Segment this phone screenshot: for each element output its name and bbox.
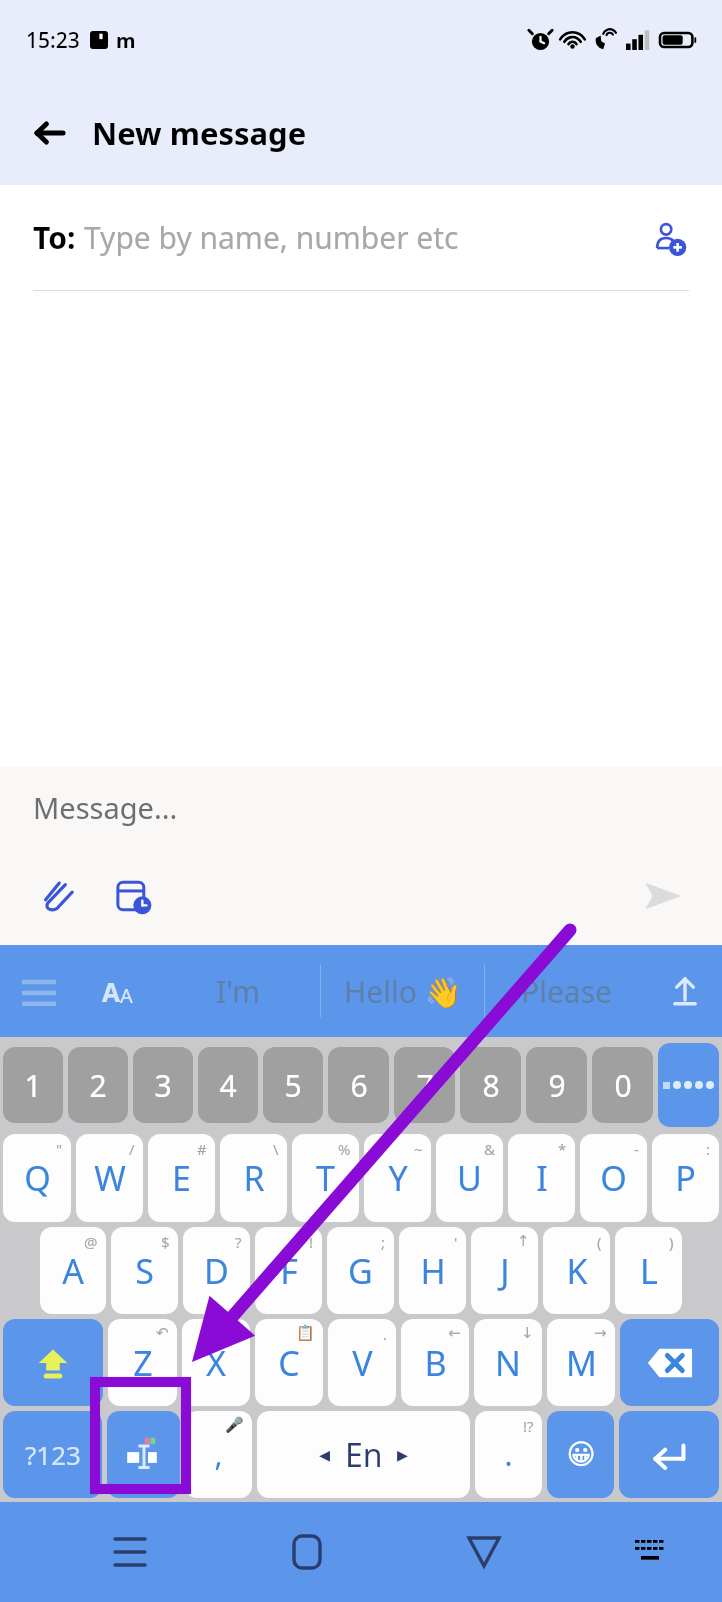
button[interactable]: Hide keyboard (615, 1517, 685, 1587)
button[interactable]: Delete (620, 1319, 719, 1406)
button[interactable]: F (255, 1227, 322, 1314)
button[interactable]: I'm (156, 945, 320, 1037)
button[interactable]: Back (449, 1517, 519, 1587)
staticText: 6 (350, 1065, 368, 1106)
staticText: N (495, 1340, 521, 1386)
staticText: A (120, 982, 133, 1009)
button[interactable]: J (471, 1227, 538, 1314)
button[interactable]: I (508, 1134, 575, 1222)
button[interactable]: G (327, 1227, 394, 1314)
staticText: ? (235, 1232, 242, 1252)
button[interactable]: Q (3, 1134, 71, 1222)
button[interactable]: Menu (0, 945, 78, 1037)
button[interactable]: ◂ (257, 1411, 470, 1498)
button[interactable]: L (615, 1227, 682, 1314)
button[interactable]: V (328, 1319, 396, 1406)
staticText: 4 (219, 1065, 237, 1106)
button[interactable]: Split keyboard (107, 1411, 180, 1498)
staticText: C (278, 1340, 300, 1386)
staticText: ?123 (25, 1437, 81, 1472)
button[interactable]: Expand (648, 945, 722, 1037)
button[interactable]: Schedule message (104, 867, 162, 925)
button[interactable]: Shift (3, 1319, 103, 1406)
staticText: E (172, 1155, 191, 1201)
button[interactable]: 8 (460, 1047, 521, 1123)
button[interactable]: C (255, 1319, 323, 1406)
staticText: A (62, 1248, 84, 1294)
button[interactable]: Y (364, 1134, 431, 1222)
button[interactable]: H (399, 1227, 466, 1314)
staticText: ! (309, 1232, 314, 1252)
button[interactable]: S (111, 1227, 178, 1314)
button[interactable]: U (436, 1134, 503, 1222)
button[interactable]: Attach (28, 867, 86, 925)
button[interactable]: 9 (526, 1047, 587, 1123)
staticText: B (424, 1340, 447, 1386)
button[interactable]: Add contact (642, 211, 696, 265)
button[interactable]: Send (632, 865, 694, 927)
staticText: 3 (154, 1065, 172, 1106)
button[interactable]: X (182, 1319, 250, 1406)
button[interactable]: T (292, 1134, 359, 1222)
staticText: 8 (482, 1065, 500, 1106)
staticText: !? (523, 1416, 534, 1436)
button[interactable]: M (547, 1319, 615, 1406)
button[interactable]: Back (22, 105, 78, 161)
staticText: \ (273, 1139, 279, 1159)
staticText: " (56, 1139, 63, 1159)
button[interactable]: A (40, 1227, 106, 1314)
staticText: L (640, 1248, 658, 1294)
staticText: , (214, 1434, 223, 1475)
button[interactable]: Text style (78, 945, 156, 1037)
staticText: @ (84, 1232, 98, 1252)
button[interactable]: B (401, 1319, 469, 1406)
staticText: - (634, 1139, 639, 1159)
button[interactable]: N (474, 1319, 542, 1406)
button[interactable]: 2 (68, 1047, 128, 1123)
button[interactable]: 😀 (547, 1411, 614, 1498)
staticText: ' (454, 1232, 458, 1252)
button[interactable]: Recents (95, 1517, 165, 1587)
staticText: 5 (284, 1065, 302, 1106)
button[interactable]: Home (272, 1517, 342, 1587)
button[interactable]: E (148, 1134, 215, 1222)
button[interactable]: 0 (592, 1047, 653, 1123)
staticText: ← (448, 1324, 461, 1341)
button[interactable]: 1 (3, 1047, 63, 1123)
staticText: 📋 (296, 1324, 315, 1342)
button[interactable]: Z (108, 1319, 177, 1406)
button[interactable]: R (220, 1134, 287, 1222)
button[interactable]: 5 (263, 1047, 323, 1123)
button[interactable]: . (475, 1411, 542, 1498)
button[interactable]: W (76, 1134, 143, 1222)
button[interactable]: 3 (133, 1047, 193, 1123)
button[interactable]: ?123 (3, 1411, 102, 1498)
button[interactable]: More (658, 1043, 719, 1127)
staticText: To: (33, 217, 84, 258)
button[interactable]: P (652, 1134, 719, 1222)
button[interactable]: K (543, 1227, 610, 1314)
staticText: I'm (216, 971, 261, 1012)
button[interactable]: Please (485, 945, 648, 1037)
button[interactable]: O (580, 1134, 647, 1222)
staticText: 0 (614, 1065, 632, 1106)
staticText: Hello 👋 (344, 971, 462, 1012)
staticText: 15:23 (26, 26, 80, 55)
button[interactable]: D (183, 1227, 250, 1314)
staticText: ↓ (521, 1324, 534, 1341)
staticText: V (352, 1340, 373, 1386)
staticText: . (504, 1434, 513, 1475)
staticText: S (135, 1248, 154, 1294)
button[interactable]: 7 (394, 1047, 455, 1123)
staticText: ◂ (319, 1442, 331, 1468)
button[interactable]: 6 (328, 1047, 389, 1123)
staticText: 9 (548, 1065, 566, 1106)
staticText: ( (597, 1232, 602, 1252)
button[interactable]: Enter (619, 1411, 719, 1498)
button[interactable]: 4 (198, 1047, 258, 1123)
staticText: * (558, 1139, 567, 1159)
button[interactable]: Hello 👋 (321, 945, 484, 1037)
button[interactable]: , (185, 1411, 252, 1498)
staticText: R (243, 1155, 265, 1201)
